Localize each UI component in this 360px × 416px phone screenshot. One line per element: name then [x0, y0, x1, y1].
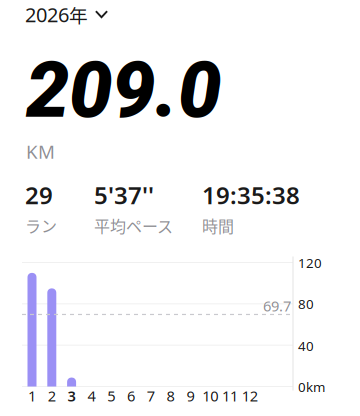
staticText: 4: [87, 386, 95, 405]
staticText: 年: [69, 1, 88, 28]
staticText: KM: [26, 139, 55, 164]
staticText: 69.7: [263, 296, 291, 315]
staticText: 2026: [25, 1, 69, 28]
staticText: 平均ペース: [94, 214, 173, 237]
staticText: 12: [242, 386, 258, 405]
staticText: 時間: [202, 214, 234, 237]
staticText: 11: [222, 386, 238, 405]
staticText: 40: [298, 337, 314, 355]
staticText: 10: [202, 386, 218, 405]
staticText: 3: [68, 386, 76, 405]
staticText: 5'37'': [94, 179, 154, 211]
staticText: 5: [107, 386, 115, 405]
staticText: 29: [25, 179, 53, 211]
staticText: 7: [147, 386, 155, 405]
staticText: 1: [28, 386, 36, 405]
staticText: ラン: [25, 214, 57, 237]
button[interactable]: 2026: [19, 0, 114, 32]
staticText: 8: [167, 386, 175, 405]
staticText: 6: [127, 386, 135, 405]
staticText: 9: [186, 386, 194, 405]
staticText: 80: [298, 295, 314, 313]
staticText: 120: [298, 254, 322, 272]
staticText: 0km: [298, 378, 325, 396]
staticText: 2: [48, 386, 56, 405]
staticText: 209.0: [26, 45, 221, 136]
staticText: 19:35:38: [202, 179, 300, 211]
